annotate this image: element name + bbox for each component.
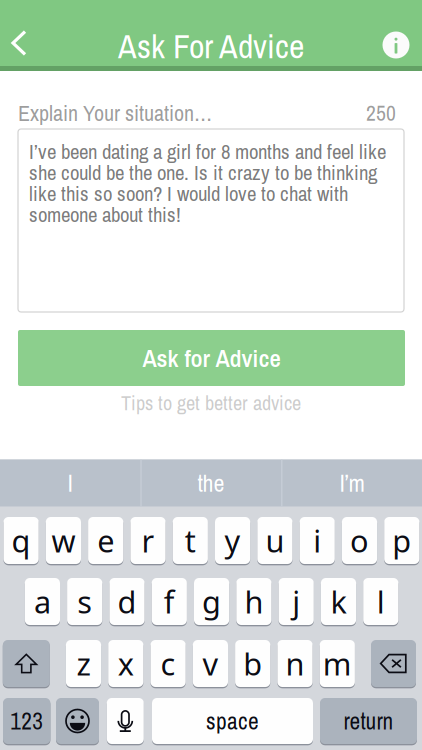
staticText: the	[197, 467, 224, 499]
staticText: Tips to get better advice	[121, 389, 301, 417]
button[interactable]: l	[363, 578, 398, 627]
button[interactable]: v	[193, 640, 228, 689]
button[interactable]: Ask for Advice	[18, 330, 405, 386]
button[interactable]: p	[384, 517, 419, 566]
button[interactable]: b	[235, 640, 270, 689]
staticText: c	[161, 643, 176, 684]
button[interactable]: f	[152, 578, 187, 627]
button[interactable]: space	[152, 698, 313, 746]
button[interactable]: m	[320, 640, 355, 689]
staticText: q	[12, 520, 31, 561]
staticText: I’ve been dating a girl for 8 months and…	[29, 141, 386, 225]
staticText: I’m	[339, 467, 364, 499]
button[interactable]: x	[108, 640, 143, 689]
button[interactable]: g	[194, 578, 229, 627]
staticText: g	[202, 581, 221, 622]
button[interactable]: e	[88, 517, 123, 566]
staticText: y	[225, 520, 241, 561]
staticText: j	[292, 581, 300, 622]
staticText: k	[330, 581, 346, 622]
button[interactable]: I’m	[282, 459, 422, 506]
staticText: h	[244, 581, 263, 622]
button[interactable]: Dictate	[107, 698, 144, 746]
button[interactable]: Back	[0, 22, 38, 64]
button[interactable]: return	[320, 698, 417, 746]
button[interactable]: the	[141, 459, 281, 506]
button[interactable]: Tips to get better advice	[0, 391, 422, 415]
button[interactable]: r	[130, 517, 166, 566]
button[interactable]: n	[277, 640, 313, 689]
button[interactable]: I	[0, 459, 140, 506]
staticText: w	[51, 520, 75, 561]
button[interactable]: w	[46, 517, 81, 566]
button[interactable]: Information	[376, 25, 416, 65]
button[interactable]: Shift	[3, 640, 50, 689]
staticText: e	[97, 520, 114, 561]
staticText: Ask for Advice	[142, 341, 280, 375]
button[interactable]: j	[279, 578, 314, 627]
staticText: u	[265, 520, 284, 561]
staticText: t	[185, 520, 196, 561]
button[interactable]: u	[257, 517, 292, 566]
staticText: a	[34, 581, 51, 622]
staticText: 123	[10, 705, 43, 737]
button[interactable]: o	[342, 517, 377, 566]
staticText: I	[67, 467, 72, 499]
staticText: Explain Your situation…	[18, 98, 212, 128]
button[interactable]: z	[66, 640, 101, 689]
staticText: l	[377, 581, 385, 622]
button[interactable]: h	[236, 578, 271, 627]
button[interactable]: Delete	[371, 640, 416, 689]
button[interactable]: a	[25, 578, 60, 627]
staticText: d	[117, 581, 136, 622]
staticText: z	[76, 643, 90, 684]
staticText: o	[350, 520, 369, 561]
button[interactable]: y	[215, 517, 250, 566]
button[interactable]: q	[3, 517, 39, 566]
staticText: x	[118, 643, 134, 684]
button[interactable]: 123	[3, 698, 50, 746]
staticText: r	[141, 520, 154, 561]
button[interactable]: t	[173, 517, 208, 566]
button[interactable]: s	[67, 578, 102, 627]
staticText: m	[323, 643, 352, 684]
staticText: p	[392, 520, 411, 561]
staticText: space	[206, 705, 259, 737]
staticText: b	[243, 643, 262, 684]
staticText: return	[343, 705, 393, 737]
staticText: i	[313, 520, 321, 561]
button[interactable]: d	[109, 578, 145, 627]
staticText: 250	[366, 98, 396, 128]
button[interactable]: Emoji	[56, 698, 99, 746]
staticText: s	[77, 581, 92, 622]
button[interactable]: c	[150, 640, 186, 689]
staticText: Ask For Advice	[118, 23, 304, 69]
button[interactable]: k	[321, 578, 356, 627]
staticText: n	[285, 643, 304, 684]
staticText: f	[164, 581, 175, 622]
button[interactable]: i	[300, 517, 335, 566]
staticText: v	[202, 643, 218, 684]
